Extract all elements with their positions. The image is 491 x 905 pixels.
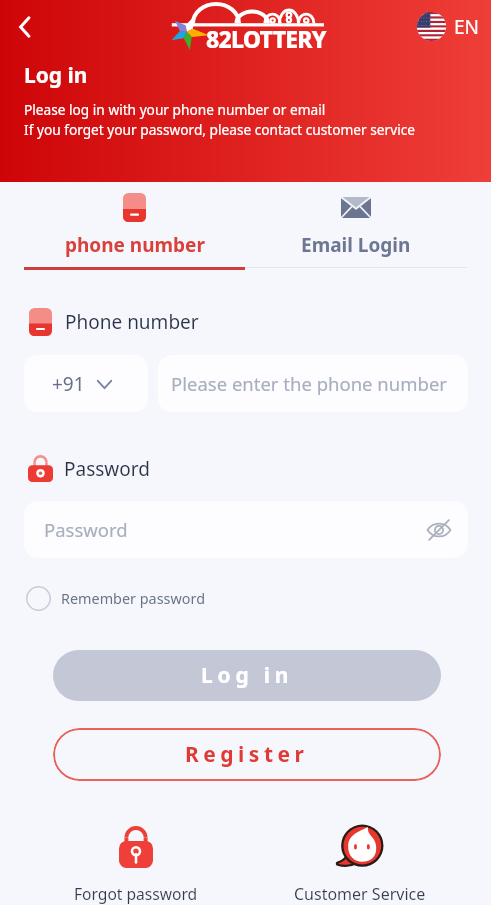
staticText: Customer Service — [294, 883, 426, 905]
staticText: Password — [44, 517, 128, 542]
button[interactable]: Email Login — [245, 182, 467, 268]
staticText: Email Login — [301, 232, 411, 258]
button[interactable]: Forgot password — [56, 826, 215, 904]
button[interactable]: EN — [417, 12, 480, 41]
button[interactable]: Password — [24, 501, 468, 558]
button[interactable]: Back — [4, 6, 46, 48]
button[interactable]: Show password — [420, 511, 458, 549]
staticText: Remember password — [61, 589, 205, 609]
button[interactable]: phone number — [24, 182, 245, 270]
staticText: phone number — [65, 232, 205, 258]
staticText: Please log in with your phone number or … — [24, 100, 326, 119]
staticText: Password — [64, 456, 150, 482]
staticText: Log in — [201, 661, 294, 690]
staticText: +91 — [52, 371, 85, 397]
staticText: EN — [454, 14, 480, 40]
button[interactable]: Please enter the phone number — [158, 355, 468, 412]
button[interactable]: +91 — [24, 355, 148, 412]
button[interactable]: Log in — [53, 650, 441, 701]
staticText: Register — [185, 740, 309, 769]
staticText: 82LOTTERY — [206, 23, 326, 54]
staticText: Log in — [24, 61, 88, 90]
button[interactable]: Register — [53, 728, 441, 781]
staticText: Please enter the phone number — [171, 371, 447, 396]
staticText: Phone number — [65, 309, 199, 335]
staticText: Forgot password — [74, 883, 198, 904]
button[interactable]: Customer Service — [274, 825, 445, 905]
button[interactable]: Remember password — [26, 586, 205, 611]
staticText: If you forget your password, please cont… — [24, 120, 415, 139]
